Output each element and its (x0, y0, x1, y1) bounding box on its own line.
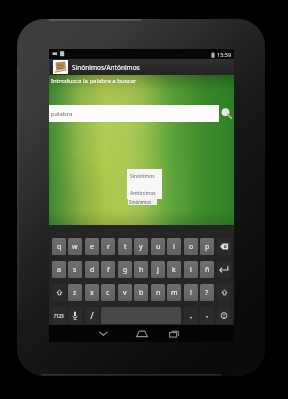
staticText: Antónimos (130, 190, 156, 197)
staticText: u (156, 242, 161, 252)
staticText: t (124, 242, 127, 252)
button[interactable]: f (101, 261, 115, 278)
staticText: ?123 (54, 313, 64, 319)
button[interactable]: g (118, 261, 132, 278)
staticText: x (90, 288, 94, 298)
button[interactable]: v (118, 284, 132, 301)
button[interactable]: s (68, 261, 82, 278)
staticText: k (172, 265, 176, 275)
button[interactable]: h (134, 261, 148, 278)
staticText: a (57, 265, 61, 275)
staticText: Sinónimos (130, 173, 155, 180)
staticText: j (157, 265, 159, 275)
button[interactable]: x (85, 284, 99, 301)
staticText: e (90, 242, 94, 252)
button[interactable]: c (101, 284, 115, 301)
button[interactable]: Entrada de voz (68, 307, 82, 324)
button[interactable]: Mayúsculas (217, 284, 231, 301)
staticText: h (139, 265, 144, 275)
staticText: 15:59 (217, 51, 232, 58)
staticText: p (205, 242, 210, 252)
button[interactable]: Borrar (217, 238, 231, 255)
button[interactable]: Cambiar idioma (85, 307, 99, 324)
staticText: w (72, 242, 78, 252)
button[interactable]: w (68, 238, 82, 255)
button[interactable]: b (134, 284, 148, 301)
staticText: r (107, 242, 110, 252)
staticText: d (90, 265, 95, 275)
button[interactable]: ! (184, 284, 198, 301)
staticText: v (123, 288, 127, 298)
staticText: Introduzca la palabra a buscar (51, 77, 137, 85)
staticText: c (106, 288, 110, 298)
button[interactable]: k (167, 261, 181, 278)
button[interactable]: Punto (200, 307, 214, 324)
button[interactable]: Sinónimos/Antónimos (49, 59, 234, 75)
button[interactable]: Inicio (127, 325, 156, 342)
staticText: m (171, 288, 178, 298)
button[interactable]: ñ (200, 261, 214, 278)
staticText: g (123, 265, 128, 275)
button[interactable]: q (52, 238, 66, 255)
button[interactable]: ? (200, 284, 214, 301)
staticText: ñ (205, 265, 210, 275)
button[interactable]: Sinónimos (128, 199, 157, 205)
button[interactable]: j (151, 261, 165, 278)
staticText: s (73, 265, 77, 275)
button[interactable]: Ocultar teclado (89, 325, 118, 342)
button[interactable]: i (167, 238, 181, 255)
staticText: Sinónimos/Antónimos (72, 63, 140, 72)
staticText: l (190, 265, 192, 275)
button[interactable]: Intro (217, 261, 231, 278)
staticText: ? (205, 288, 209, 298)
button[interactable]: y (134, 238, 148, 255)
button[interactable]: o (184, 238, 198, 255)
staticText: n (156, 288, 161, 298)
button[interactable]: Mayúsculas (52, 284, 66, 301)
staticText: b (139, 288, 144, 298)
button[interactable]: t (118, 238, 132, 255)
staticText: o (189, 242, 194, 252)
button[interactable]: e (85, 238, 99, 255)
button[interactable]: ?123 (52, 307, 66, 324)
button[interactable]: m (167, 284, 181, 301)
button[interactable]: d (85, 261, 99, 278)
button[interactable]: Recientes (159, 325, 188, 342)
staticText: f (107, 265, 110, 275)
staticText: z (73, 288, 77, 298)
staticText: Sinónimos (129, 199, 152, 205)
button[interactable]: l (184, 261, 198, 278)
button[interactable]: a (52, 261, 66, 278)
button[interactable]: u (151, 238, 165, 255)
staticText: q (57, 242, 62, 252)
staticText: y (139, 242, 143, 252)
button[interactable]: z (68, 284, 82, 301)
staticText: i (173, 242, 175, 252)
staticText: ! (190, 288, 192, 298)
button[interactable]: Buscar (219, 105, 234, 122)
button[interactable]: palabra (49, 105, 219, 122)
button[interactable]: n (151, 284, 165, 301)
button[interactable]: Coma (184, 307, 198, 324)
staticText: palabra (51, 110, 73, 118)
button[interactable]: p (200, 238, 214, 255)
button[interactable]: r (101, 238, 115, 255)
button[interactable]: Emoticonos (217, 307, 231, 324)
